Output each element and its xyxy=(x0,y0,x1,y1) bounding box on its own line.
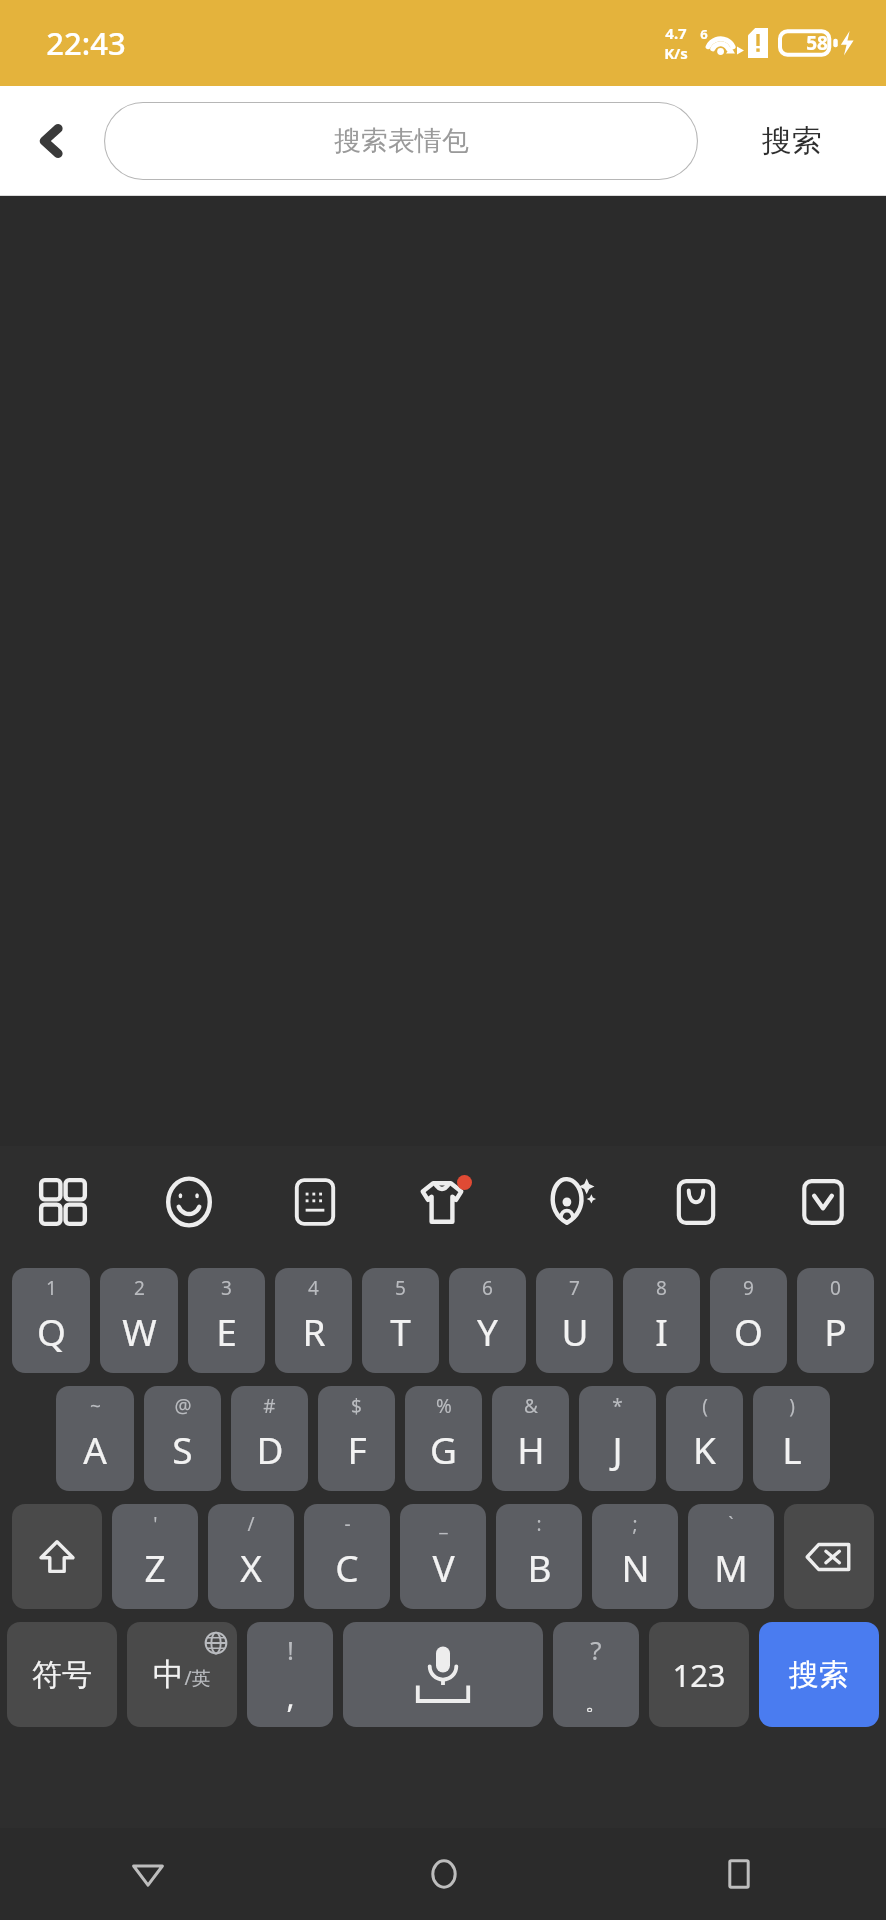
staticText: ' xyxy=(153,1511,158,1537)
staticText: K xyxy=(693,1424,716,1474)
staticText: 0 xyxy=(830,1275,841,1301)
button[interactable]: Home xyxy=(296,1828,591,1920)
staticText: V xyxy=(432,1542,455,1592)
button[interactable]: Shift xyxy=(12,1504,102,1609)
button[interactable]: 中 xyxy=(127,1622,237,1727)
button[interactable]: Backspace xyxy=(784,1504,874,1609)
button[interactable]: 搜索 xyxy=(698,86,886,196)
button[interactable]: 1 xyxy=(12,1268,90,1373)
staticText: K/s xyxy=(664,43,688,63)
staticText: $ xyxy=(351,1393,362,1419)
button[interactable]: 8 xyxy=(623,1268,700,1373)
staticText: 22:43 xyxy=(46,22,126,64)
button[interactable]: - xyxy=(304,1504,390,1609)
staticText: 58 xyxy=(806,30,828,56)
staticText: /英 xyxy=(184,1665,211,1691)
button[interactable]: $ xyxy=(318,1386,395,1491)
staticText: 3 xyxy=(221,1275,232,1301)
staticText: : xyxy=(536,1511,542,1537)
staticText: D xyxy=(256,1424,284,1474)
staticText: 6 xyxy=(482,1275,493,1301)
staticText: @ xyxy=(174,1393,192,1419)
staticText: 8 xyxy=(656,1275,667,1301)
staticText: 4 xyxy=(308,1275,319,1301)
button[interactable]: 9 xyxy=(710,1268,787,1373)
staticText: 2 xyxy=(134,1275,145,1301)
button[interactable]: ~ xyxy=(56,1386,134,1491)
button[interactable]: 6 xyxy=(449,1268,526,1373)
button[interactable]: 符号 xyxy=(7,1622,117,1727)
staticText: 1 xyxy=(46,1275,57,1301)
staticText: / xyxy=(247,1511,255,1537)
staticText: C xyxy=(335,1542,359,1592)
button[interactable]: Store xyxy=(632,1146,759,1258)
staticText: 6 xyxy=(700,25,708,43)
button[interactable]: ' xyxy=(112,1504,198,1609)
staticText: O xyxy=(734,1306,763,1356)
staticText: F xyxy=(347,1424,367,1474)
staticText: Y xyxy=(477,1306,498,1356)
staticText: B xyxy=(527,1542,552,1592)
button[interactable]: @ xyxy=(144,1386,221,1491)
staticText: T xyxy=(390,1306,411,1356)
staticText: 搜索 xyxy=(762,122,822,160)
button[interactable]: Collapse xyxy=(759,1146,886,1258)
staticText: # xyxy=(263,1393,276,1419)
button[interactable]: 123 xyxy=(649,1622,749,1727)
staticText: 。 xyxy=(585,1689,607,1717)
button[interactable]: 7 xyxy=(536,1268,613,1373)
staticText: 搜索表情包 xyxy=(334,124,469,158)
button[interactable]: Back xyxy=(0,1828,296,1920)
button[interactable]: Categories xyxy=(0,1146,126,1258)
staticText: P xyxy=(824,1306,847,1356)
button[interactable]: 2 xyxy=(100,1268,178,1373)
button[interactable]: ( xyxy=(666,1386,743,1491)
staticText: S xyxy=(172,1424,193,1474)
button[interactable]: Emoji xyxy=(126,1146,252,1258)
button[interactable]: Stickers xyxy=(378,1146,505,1258)
staticText: L xyxy=(782,1424,802,1474)
button[interactable]: _ xyxy=(400,1504,486,1609)
staticText: ; xyxy=(632,1511,638,1537)
button[interactable]: * xyxy=(579,1386,656,1491)
staticText: Q xyxy=(37,1306,66,1356)
button[interactable]: AI sticker xyxy=(505,1146,632,1258)
button[interactable]: 搜索表情包 xyxy=(104,102,698,180)
staticText: U xyxy=(561,1306,589,1356)
staticText: ( xyxy=(702,1393,708,1419)
button[interactable]: ! xyxy=(247,1622,333,1727)
staticText: 9 xyxy=(743,1275,754,1301)
button[interactable]: # xyxy=(231,1386,308,1491)
button[interactable]: 5 xyxy=(362,1268,439,1373)
button[interactable]: 3 xyxy=(188,1268,265,1373)
button[interactable]: 搜索 xyxy=(759,1622,879,1727)
staticText: ` xyxy=(728,1511,734,1537)
button[interactable]: ? xyxy=(553,1622,639,1727)
staticText: _ xyxy=(439,1511,448,1537)
button[interactable]: ` xyxy=(688,1504,774,1609)
staticText: R xyxy=(302,1306,326,1356)
staticText: H xyxy=(517,1424,545,1474)
staticText: J xyxy=(612,1424,623,1474)
staticText: 7 xyxy=(569,1275,580,1301)
button[interactable]: / xyxy=(208,1504,294,1609)
button[interactable]: ) xyxy=(753,1386,830,1491)
staticText: - xyxy=(344,1511,351,1537)
button[interactable]: & xyxy=(492,1386,569,1491)
staticText: A xyxy=(83,1424,107,1474)
button[interactable]: 0 xyxy=(797,1268,874,1373)
button[interactable]: Recents xyxy=(591,1828,886,1920)
button[interactable] xyxy=(343,1622,543,1727)
staticText: , xyxy=(286,1676,295,1717)
button[interactable]: Keyboard xyxy=(252,1146,378,1258)
button[interactable]: 4 xyxy=(275,1268,352,1373)
button[interactable]: % xyxy=(405,1386,482,1491)
staticText: Z xyxy=(144,1542,166,1592)
staticText: 5 xyxy=(395,1275,406,1301)
button[interactable]: : xyxy=(496,1504,582,1609)
staticText: 符号 xyxy=(32,1656,92,1694)
button[interactable]: ; xyxy=(592,1504,678,1609)
staticText: N xyxy=(621,1542,650,1592)
staticText: W xyxy=(122,1306,157,1356)
button[interactable]: Back xyxy=(0,86,104,196)
